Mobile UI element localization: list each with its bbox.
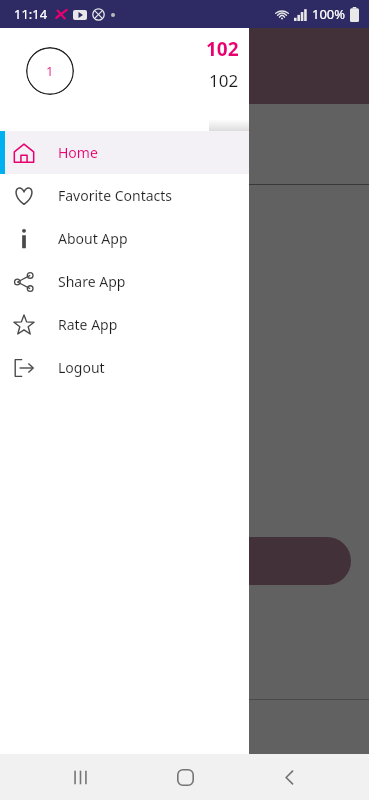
button[interactable]: Favorite Contacts xyxy=(0,174,249,217)
button[interactable]: 3 xyxy=(0,185,369,271)
button[interactable]: Back xyxy=(265,754,313,800)
button[interactable]: Rate App xyxy=(0,303,249,346)
button[interactable]: Home xyxy=(0,131,249,174)
staticText: 102 xyxy=(209,69,239,92)
staticText: Home xyxy=(58,143,98,162)
staticText: 100% xyxy=(312,5,346,23)
button[interactable]: Share App xyxy=(0,260,249,303)
staticText: Favorite Contacts xyxy=(58,186,173,205)
button[interactable]: 9 xyxy=(0,357,369,443)
staticText: Logout xyxy=(58,358,105,377)
button[interactable]: 6 xyxy=(0,271,369,357)
staticText: Share App xyxy=(58,272,126,291)
button[interactable] xyxy=(18,537,351,585)
staticText: 11:14 xyxy=(14,5,48,23)
button[interactable]: Recent apps xyxy=(56,754,104,800)
staticText: Rate App xyxy=(58,315,118,334)
button[interactable]: Home xyxy=(161,754,209,800)
staticText: 102 xyxy=(206,36,239,62)
button[interactable]: # xyxy=(0,443,369,529)
button[interactable]: About App xyxy=(0,217,249,260)
staticText: About App xyxy=(58,229,128,248)
button[interactable]: Logout xyxy=(0,346,249,389)
staticText: 1 xyxy=(46,62,54,80)
